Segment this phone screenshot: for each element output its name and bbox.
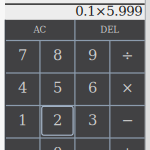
button[interactable]: 4 (6, 72, 39, 103)
button[interactable]: + (110, 137, 144, 150)
button[interactable]: − (110, 104, 144, 136)
staticText: 1 (18, 112, 27, 129)
staticText: 6 (88, 79, 97, 96)
button[interactable]: 6 (75, 72, 109, 103)
staticText: 7 (18, 47, 27, 64)
staticText: 2 (53, 112, 62, 129)
button[interactable]: 2 (41, 104, 74, 136)
button[interactable]: ÷ (110, 39, 144, 71)
button[interactable]: DEL (75, 20, 144, 39)
button[interactable]: . (75, 137, 109, 150)
staticText: DEL (100, 25, 119, 35)
button[interactable]: AC (6, 20, 74, 39)
staticText: + (121, 144, 133, 150)
staticText: 0 (53, 144, 62, 150)
staticText: 3 (88, 112, 97, 129)
button[interactable] (6, 137, 39, 150)
button[interactable]: 8 (41, 39, 74, 71)
button[interactable]: 9 (75, 39, 109, 71)
button[interactable]: × (110, 72, 144, 103)
staticText: × (121, 79, 133, 96)
staticText: 4 (18, 79, 27, 96)
staticText: 5 (53, 79, 62, 96)
button[interactable]: 1 (6, 104, 39, 136)
button[interactable]: 0 (41, 137, 74, 150)
button[interactable]: 5 (41, 72, 74, 103)
staticText: 0.1×5.999 (75, 3, 142, 19)
staticText: − (121, 112, 133, 129)
staticText: 8 (53, 47, 62, 64)
staticText: ÷ (121, 47, 133, 64)
button[interactable]: 7 (6, 39, 39, 71)
staticText: 9 (88, 47, 97, 64)
staticText: AC (33, 25, 46, 35)
button[interactable]: 3 (75, 104, 109, 136)
